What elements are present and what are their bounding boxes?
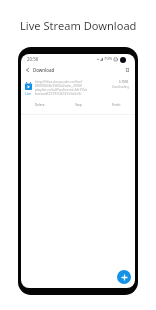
staticText: Stop xyxy=(75,103,82,107)
staticText: Live xyxy=(25,91,32,96)
staticText: Finish xyxy=(112,103,121,107)
staticText: Live Stream Download xyxy=(20,18,137,33)
staticText: 20:56 xyxy=(27,56,39,62)
button[interactable]: Delete xyxy=(21,101,59,109)
staticText: Delete xyxy=(35,103,45,107)
button[interactable]: Add download xyxy=(117,270,131,284)
staticText: Downloading xyxy=(112,85,129,89)
button[interactable]: Finish xyxy=(97,101,135,109)
staticText: 6.7MB xyxy=(119,80,129,84)
button[interactable]: Live xyxy=(21,77,135,113)
button[interactable]: Storage settings xyxy=(123,65,132,75)
staticText: 70% xyxy=(104,56,113,62)
staticText: http://hlsa.douyucdn.cn/live/000000/4b59… xyxy=(35,79,89,96)
button[interactable]: Back xyxy=(23,65,32,75)
staticText: Download xyxy=(33,67,55,73)
button[interactable]: Stop xyxy=(59,101,97,109)
